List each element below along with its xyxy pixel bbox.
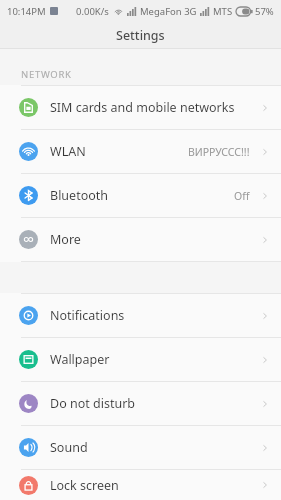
- staticText: 10:14PM: [7, 5, 46, 18]
- staticText: Do not disturb: [50, 395, 135, 412]
- staticText: NETWORK: [21, 68, 72, 81]
- staticText: More: [50, 231, 81, 248]
- staticText: Settings: [116, 27, 165, 44]
- staticText: MTS: [213, 5, 233, 18]
- staticText: Wallpaper: [50, 351, 110, 368]
- staticText: Off: [234, 189, 250, 203]
- staticText: SIM cards and mobile networks: [50, 99, 235, 116]
- button[interactable]: Lock screen: [0, 470, 281, 500]
- staticText: Sound: [50, 439, 88, 456]
- staticText: MegaFon 3G: [140, 5, 197, 18]
- button[interactable]: SIM cards and mobile networks: [0, 86, 281, 129]
- staticText: WLAN: [50, 143, 86, 160]
- button[interactable]: More: [0, 218, 281, 261]
- button[interactable]: Wallpaper: [0, 338, 281, 381]
- staticText: ВИРРУССС!!!: [188, 145, 250, 159]
- staticText: Lock screen: [50, 477, 119, 494]
- staticText: 57%: [255, 5, 274, 18]
- staticText: Bluetooth: [50, 187, 109, 204]
- button[interactable]: Do not disturb: [0, 382, 281, 425]
- button[interactable]: Bluetooth: [0, 174, 281, 217]
- button[interactable]: Sound: [0, 426, 281, 469]
- staticText: 0.00K/s: [76, 5, 109, 18]
- button[interactable]: WLAN: [0, 130, 281, 173]
- button[interactable]: Notifications: [0, 294, 281, 337]
- staticText: Notifications: [50, 307, 125, 324]
